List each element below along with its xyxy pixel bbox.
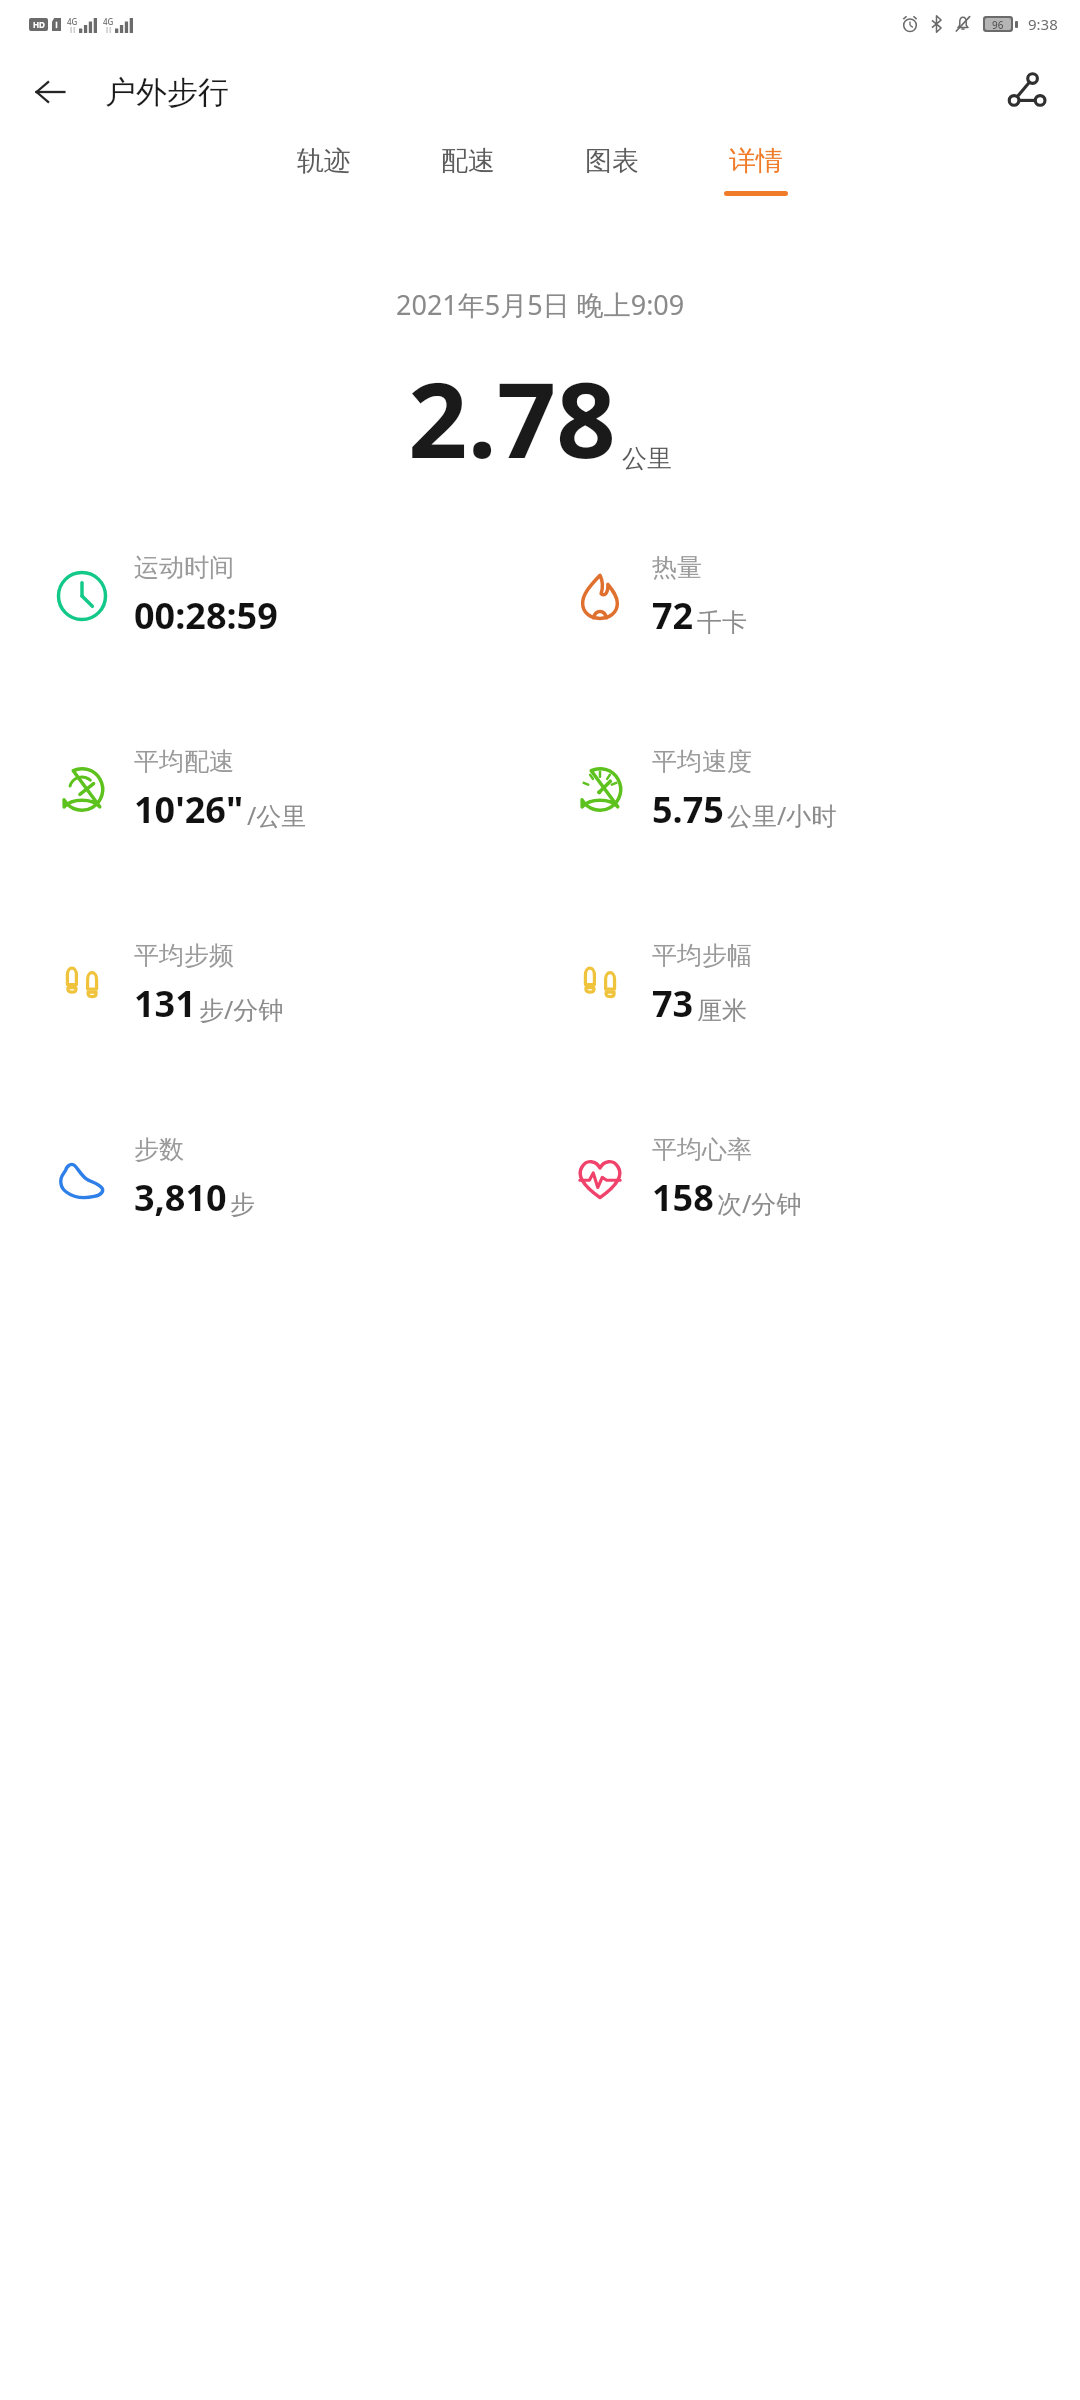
button[interactable]: 详情 [684, 144, 828, 238]
staticText: 73 [652, 979, 694, 1028]
staticText: 4G [103, 16, 114, 27]
staticText: 厘米 [697, 995, 747, 1026]
button[interactable]: 步数 [0, 1111, 540, 1245]
staticText: 72 [652, 591, 694, 640]
button[interactable]: 平均配速 [0, 723, 540, 857]
button[interactable]: 平均速度 [540, 723, 1080, 857]
staticText: 4G [67, 16, 78, 27]
staticText: 5.75 [652, 785, 724, 834]
staticText: 公里/小时 [727, 798, 837, 832]
button[interactable]: 平均步频 [0, 917, 540, 1051]
button[interactable]: 平均心率 [540, 1111, 1080, 1245]
staticText: 2021年5月5日 晚上9:09 [396, 286, 685, 323]
staticText: 次/分钟 [717, 1186, 802, 1220]
staticText: 千卡 [697, 607, 747, 638]
staticText: 户外步行 [105, 73, 229, 112]
staticText: 详情 [729, 144, 783, 178]
staticText: 2.78 [408, 347, 616, 489]
staticText: 轨迹 [297, 144, 351, 178]
staticText: HD [33, 19, 45, 30]
staticText: 平均配速 [134, 746, 234, 777]
staticText: 步/分钟 [199, 992, 284, 1026]
staticText: 平均步频 [134, 940, 234, 971]
staticText: 9:38 [1028, 14, 1058, 34]
button[interactable]: 平均步幅 [540, 917, 1080, 1051]
staticText: 配速 [441, 144, 495, 178]
staticText: 00:28:59 [134, 591, 278, 640]
staticText: 平均步幅 [652, 940, 752, 971]
staticText: 平均速度 [652, 746, 752, 777]
staticText: 公里 [622, 443, 672, 474]
button[interactable]: Back [22, 64, 78, 120]
staticText: 步 [230, 1189, 255, 1220]
staticText: 图表 [585, 144, 639, 178]
staticText: /公里 [247, 798, 307, 832]
staticText: 131 [134, 979, 196, 1028]
button[interactable]: 热量 [540, 529, 1080, 663]
staticText: 热量 [652, 552, 702, 583]
staticText: 10'26" [134, 785, 244, 834]
staticText: 步数 [134, 1134, 184, 1165]
staticText: 平均心率 [652, 1134, 752, 1165]
staticText: 3,810 [134, 1173, 227, 1222]
staticText: 运动时间 [134, 552, 234, 583]
button[interactable]: 轨迹 [252, 144, 396, 238]
staticText: 96 [992, 18, 1004, 30]
button[interactable]: 运动时间 [0, 529, 540, 663]
button[interactable]: 配速 [396, 144, 540, 238]
button[interactable]: 图表 [540, 144, 684, 238]
button[interactable]: Share [994, 61, 1056, 123]
staticText: 158 [652, 1173, 714, 1222]
